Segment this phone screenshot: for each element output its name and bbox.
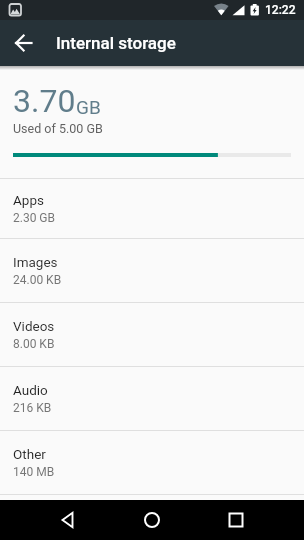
button[interactable] <box>48 500 88 540</box>
button[interactable] <box>216 500 256 540</box>
staticText: 12:22 <box>265 3 296 17</box>
staticText: 140 MB <box>13 465 55 479</box>
staticText: Audio <box>13 382 48 398</box>
staticText: 2.30 GB <box>13 211 56 225</box>
staticText: 8.00 KB <box>13 337 55 351</box>
staticText: Used of 5.00 GB <box>13 121 103 136</box>
button[interactable]: Audio <box>0 366 304 430</box>
button[interactable] <box>4 23 44 63</box>
staticText: Internal storage <box>56 33 176 53</box>
button[interactable]: Videos <box>0 302 304 366</box>
button[interactable]: Apps <box>0 178 304 238</box>
staticText: Images <box>13 254 58 270</box>
button[interactable]: Other <box>0 430 304 494</box>
button[interactable] <box>132 500 172 540</box>
staticText: Other <box>13 446 46 462</box>
staticText: 3.70 <box>13 82 76 120</box>
staticText: Apps <box>13 192 44 208</box>
button[interactable]: Images <box>0 238 304 302</box>
staticText: 24.00 KB <box>13 273 62 287</box>
staticText: 216 KB <box>13 401 52 415</box>
staticText: GB <box>76 96 101 118</box>
staticText: Videos <box>13 318 55 334</box>
